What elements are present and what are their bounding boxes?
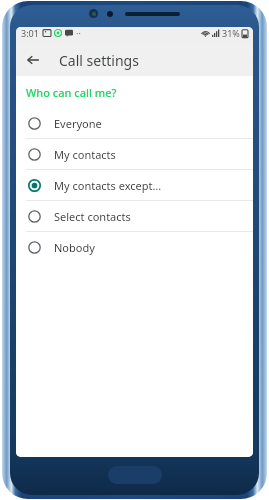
staticText: Select contacts <box>54 209 131 224</box>
staticText: 31% <box>222 27 240 39</box>
staticText: Who can call me? <box>26 85 117 100</box>
button[interactable]: Select contacts <box>16 201 253 231</box>
button[interactable]: My contacts except… <box>16 170 253 200</box>
button[interactable]: Nobody <box>16 232 253 262</box>
button[interactable]: Back <box>21 48 45 72</box>
staticText: 3:01 <box>21 27 39 39</box>
staticText: Call settings <box>59 51 139 70</box>
staticText: ·· <box>76 27 81 39</box>
staticText: My contacts except… <box>54 178 162 193</box>
button[interactable]: Home <box>108 466 162 484</box>
staticText: My contacts <box>54 147 116 162</box>
button[interactable]: My contacts <box>16 139 253 169</box>
button[interactable]: Everyone <box>16 108 253 138</box>
staticText: Nobody <box>54 240 95 255</box>
staticText: Everyone <box>54 116 102 131</box>
